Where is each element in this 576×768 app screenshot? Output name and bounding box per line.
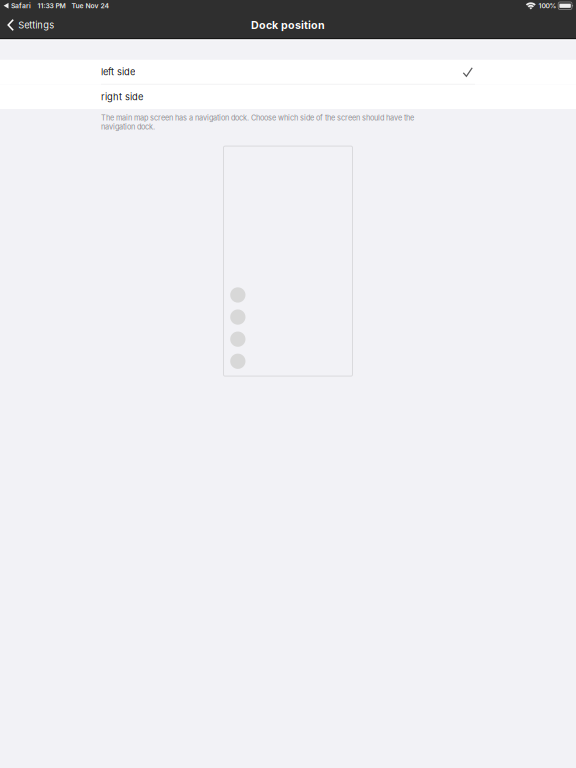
staticText: 11:33 PM <box>37 2 65 10</box>
button[interactable]: left side <box>0 60 576 84</box>
staticText: left side <box>101 66 135 77</box>
staticText: 100% <box>539 2 557 10</box>
button[interactable]: Back to Settings <box>0 14 64 36</box>
staticText: The main map screen has a navigation doc… <box>101 113 414 122</box>
staticText: right side <box>101 91 143 102</box>
staticText: Settings <box>18 19 54 31</box>
staticText: navigation dock. <box>101 122 155 131</box>
button[interactable]: right side <box>0 84 576 109</box>
staticText: Safari <box>11 2 31 10</box>
staticText: Tue Nov 24 <box>71 2 109 10</box>
staticText: Dock position <box>251 18 325 31</box>
